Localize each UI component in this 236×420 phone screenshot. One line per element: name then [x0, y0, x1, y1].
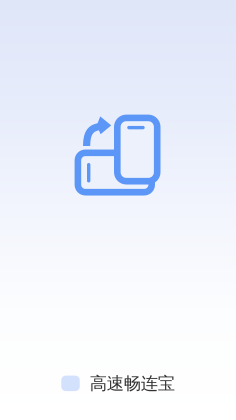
staticText: 高速畅连宝 [90, 373, 175, 394]
